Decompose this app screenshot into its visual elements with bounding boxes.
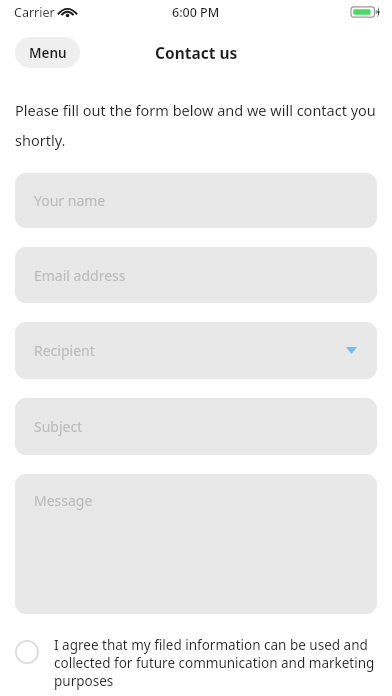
button[interactable]: Agree to terms checkbox xyxy=(15,636,380,690)
staticText: Email address xyxy=(34,266,126,285)
staticText: Subject xyxy=(34,417,83,436)
button[interactable]: Recipient xyxy=(15,322,377,379)
staticText: Menu xyxy=(29,44,67,62)
staticText: 6:00 PM xyxy=(172,4,220,21)
staticText: I agree that my filed information can be… xyxy=(54,636,380,690)
staticText: Please fill out the form below and we wi… xyxy=(15,100,377,150)
staticText: Recipient xyxy=(34,341,95,360)
button[interactable]: Email address xyxy=(15,247,377,303)
button[interactable]: Menu xyxy=(15,37,80,68)
staticText: Contact us xyxy=(155,42,238,63)
other: Agree to terms checkbox xyxy=(15,640,39,664)
staticText: Your name xyxy=(34,191,106,210)
staticText: Carrier xyxy=(14,4,55,21)
button[interactable]: Subject xyxy=(15,398,377,455)
button[interactable]: Your name xyxy=(15,173,377,228)
staticText: Message xyxy=(34,491,93,510)
